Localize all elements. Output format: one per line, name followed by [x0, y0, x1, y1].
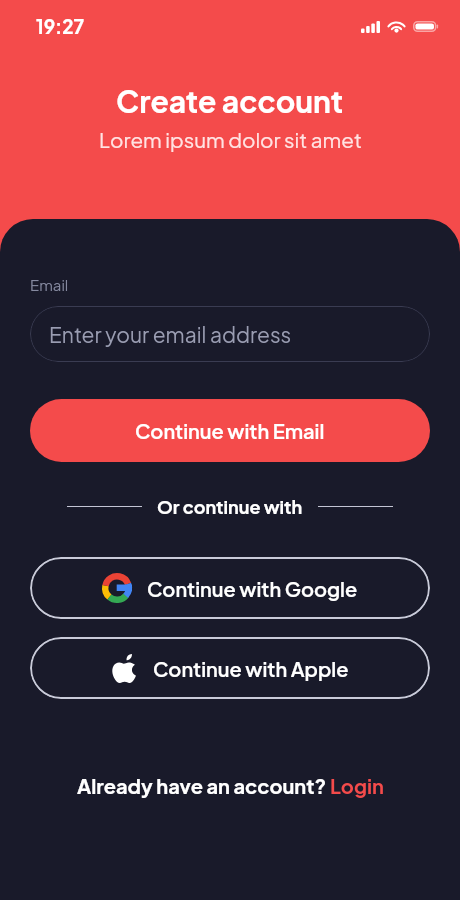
button[interactable]: Continue with Google [30, 557, 430, 619]
staticText: Lorem ipsum dolor sit amet [99, 127, 362, 153]
staticText: Enter your email address [49, 321, 292, 347]
staticText: Email [30, 275, 69, 294]
staticText: Continue with Google [147, 576, 358, 601]
staticText: Or continue with [157, 495, 303, 517]
staticText: Continue with Email [135, 418, 325, 443]
staticText: Create account [116, 82, 344, 120]
button[interactable]: Enter your email address [30, 306, 430, 362]
button[interactable]: Login [330, 773, 384, 798]
staticText: Continue with Apple [153, 656, 349, 681]
staticText: 19:27 [36, 14, 85, 38]
staticText: Already have an account? [77, 773, 330, 798]
button[interactable]: Continue with Email [30, 399, 430, 462]
button[interactable]: Continue with Apple [30, 637, 430, 699]
